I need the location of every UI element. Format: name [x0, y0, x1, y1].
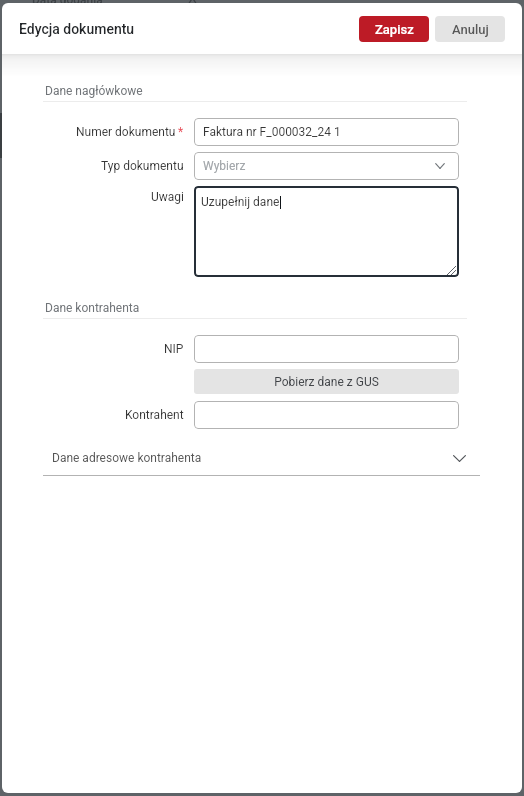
- staticText: Dane adresowe kontrahenta: [52, 451, 202, 465]
- staticText: NIP: [164, 342, 184, 356]
- staticText: Uwagi: [151, 190, 184, 204]
- staticText: Dane kontrahenta: [45, 301, 140, 315]
- button[interactable]: Dane adresowe kontrahenta: [43, 447, 480, 475]
- button[interactable]: [194, 401, 459, 429]
- staticText: Pobierz dane z GUS: [274, 375, 379, 389]
- button[interactable]: Zapisz: [359, 16, 429, 42]
- staticText: Typ dokumentu: [101, 159, 184, 173]
- staticText: Dane nagłówkowe: [45, 84, 143, 98]
- staticText: Edycja dokumentu: [19, 21, 135, 37]
- staticText: Kontrahent: [125, 408, 184, 422]
- button[interactable]: Faktura nr F_000032_24 1: [194, 118, 459, 146]
- button[interactable]: [194, 335, 459, 363]
- staticText: *: [178, 125, 184, 139]
- staticText: Zapisz: [375, 22, 414, 37]
- staticText: Faktura nr F_000032_24 1: [203, 125, 341, 139]
- button[interactable]: Pobierz dane z GUS: [194, 369, 459, 394]
- staticText: Anuluj: [452, 22, 489, 37]
- button[interactable]: Uzupełnij dane: [194, 186, 459, 277]
- staticText: Uzupełnij dane: [201, 195, 280, 209]
- button[interactable]: Wybierz: [194, 152, 459, 180]
- other: Rozwiń dane adresowe: [453, 455, 466, 462]
- staticText: Numer dokumentu: [76, 125, 176, 139]
- staticText: Data dodania: [32, 0, 103, 7]
- staticText: Wybierz: [203, 159, 246, 173]
- button[interactable]: Anuluj: [435, 16, 505, 42]
